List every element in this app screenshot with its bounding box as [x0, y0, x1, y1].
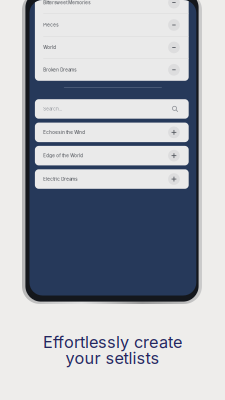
button[interactable]: Bittersweet Memories: [35, 0, 189, 14]
button[interactable]: World: [35, 36, 189, 58]
staticText: Bittersweet Memories: [43, 0, 90, 5]
button[interactable]: Broken Dreams: [35, 59, 189, 81]
button[interactable]: Add Edge of the World: [168, 150, 180, 161]
button[interactable]: Echoes in the Wind: [35, 123, 189, 142]
button[interactable]: Remove Pieces: [168, 19, 180, 31]
staticText: Broken Dreams: [43, 67, 76, 72]
button[interactable]: Remove Broken Dreams: [168, 64, 180, 76]
staticText: Edge of the World: [43, 153, 83, 158]
button[interactable]: Remove Bittersweet Memories: [168, 0, 180, 8]
staticText: Effortlessly create: [43, 332, 182, 352]
button[interactable]: Edge of the World: [35, 146, 189, 165]
staticText: Search...: [43, 106, 62, 112]
button[interactable]: Electric Dreams: [35, 169, 189, 189]
button[interactable]: Add Echoes in the Wind: [168, 126, 180, 138]
button[interactable]: Search...: [35, 99, 189, 119]
button[interactable]: Add Electric Dreams: [168, 173, 180, 185]
staticText: Electric Dreams: [43, 176, 77, 182]
staticText: Pieces: [43, 22, 58, 28]
button[interactable]: Pieces: [35, 14, 189, 36]
staticText: your setlists: [65, 348, 159, 368]
button[interactable]: Remove World: [168, 41, 180, 53]
staticText: World: [43, 45, 56, 50]
staticText: Echoes in the Wind: [43, 130, 85, 135]
